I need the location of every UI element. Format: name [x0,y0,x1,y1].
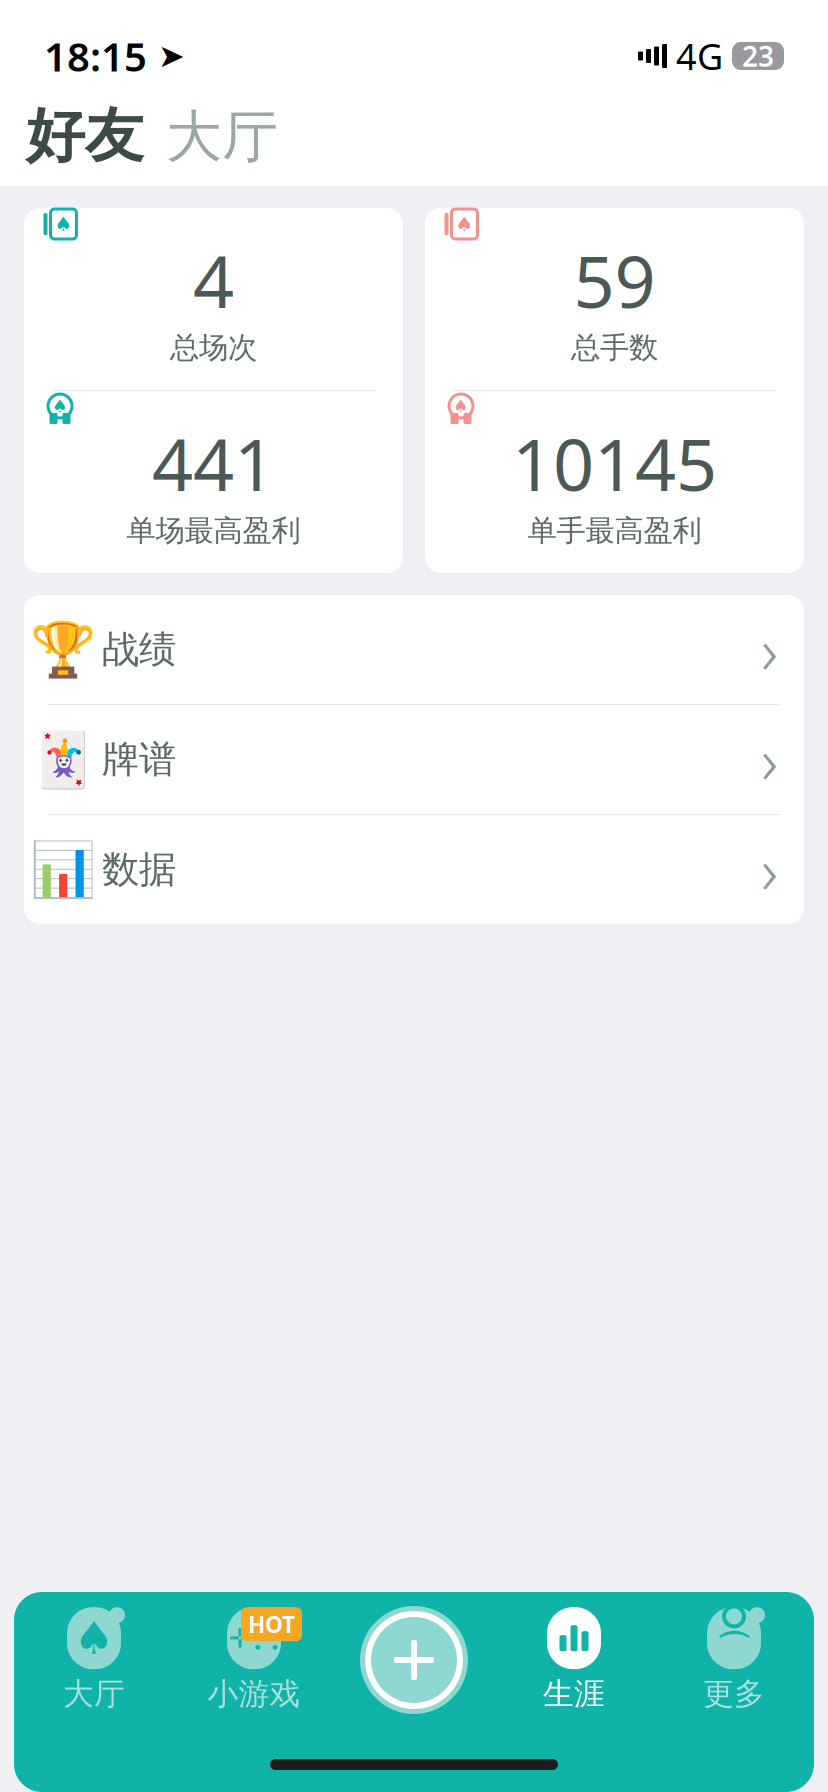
staticText: 4G [667,32,732,80]
staticText: 23 [742,37,774,75]
staticText: ⁙ [253,1619,279,1658]
button[interactable]: ✛ [174,1607,334,1713]
staticText: ♠ [73,1612,114,1664]
staticText: › [761,827,778,912]
staticText: 📊 [30,839,96,900]
staticText: 大厅 [63,1675,125,1713]
staticText: ✛ [228,1623,250,1653]
staticText: 更多 [703,1675,765,1713]
button[interactable]: 大厅 [166,102,278,171]
staticText: 🏆 [30,619,96,680]
staticText: ♠ [455,213,473,235]
button[interactable]: 好友 [26,100,144,172]
staticText: › [761,717,778,802]
staticText: 10145 [512,415,717,511]
staticText: 441 [152,415,275,511]
staticText: › [761,607,778,692]
button[interactable]: 🃏 [24,705,804,814]
staticText: 🃏 [30,729,96,790]
staticText: ♠ [54,213,72,235]
staticText: 小游戏 [207,1675,300,1713]
staticText: 战绩 [102,627,176,672]
button[interactable]: 生涯 [494,1607,654,1713]
staticText: ➤ [147,38,185,74]
staticText: HOT [248,1609,295,1639]
staticText: 单场最高盈利 [126,513,300,549]
button[interactable]: ⌒ [654,1607,814,1713]
staticText: ⌒ [716,1627,751,1670]
staticText: ♠ [52,396,68,416]
staticText: 单手最高盈利 [527,513,701,549]
staticText: 大厅 [166,102,278,171]
button[interactable]: 📊 [24,815,804,924]
staticText: 好友 [26,100,144,172]
staticText: 总手数 [571,330,658,366]
button[interactable]: Create [334,1606,494,1714]
staticText: 总场次 [170,330,257,366]
staticText: 4 [193,232,234,328]
staticText: 牌谱 [102,737,176,782]
staticText: 数据 [102,847,176,892]
staticText: 生涯 [543,1675,605,1713]
button[interactable]: 🏆 [24,595,804,704]
staticText: ♠ [453,396,469,416]
staticText: 18:15 [44,29,147,82]
staticText: 59 [573,232,655,328]
button[interactable]: ♠ [14,1607,174,1713]
